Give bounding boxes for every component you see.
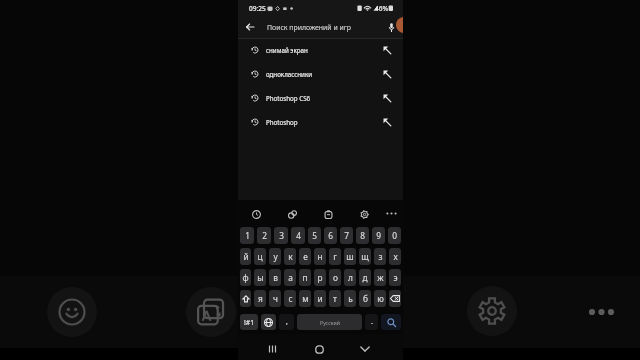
staticText: ч [273, 293, 278, 304]
button[interactable]: ч [269, 290, 281, 307]
button[interactable]: !#1 [240, 314, 258, 330]
button[interactable]: Photoshop CS6 [238, 86, 403, 110]
button[interactable]: г [329, 248, 341, 265]
button[interactable]: ц [254, 248, 266, 265]
button[interactable]: 8 [356, 227, 369, 244]
staticText: с [288, 293, 293, 304]
button[interactable]: одноклассники [238, 62, 403, 86]
button[interactable]: ж [374, 269, 386, 286]
button[interactable]: Emoji [47, 287, 97, 337]
button[interactable]: т [329, 290, 341, 307]
button[interactable]: у [269, 248, 281, 265]
button[interactable]: в [269, 269, 281, 286]
button[interactable]: к [284, 248, 296, 265]
button[interactable]: Shift [240, 290, 251, 307]
button[interactable]: 6 [324, 227, 337, 244]
staticText: т [333, 293, 337, 304]
button[interactable]: Clock [248, 206, 264, 222]
button[interactable]: й [240, 248, 251, 265]
staticText: о [333, 272, 338, 283]
staticText: э [393, 272, 398, 283]
staticText: , [286, 317, 288, 327]
button[interactable]: м [299, 290, 311, 307]
button[interactable]: 2 [257, 227, 271, 244]
button[interactable]: з [374, 248, 386, 265]
button[interactable]: Backspace [389, 290, 401, 307]
staticText: Русский [320, 319, 340, 326]
staticText: а [288, 272, 293, 283]
staticText: в [273, 272, 278, 283]
button[interactable]: Stickers [284, 206, 300, 222]
staticText: щ [361, 251, 369, 262]
button[interactable]: б [359, 290, 371, 307]
button[interactable]: Recents [264, 341, 280, 357]
staticText: ю [377, 293, 384, 304]
button[interactable]: More options [584, 304, 618, 320]
staticText: 9 [376, 230, 381, 241]
button[interactable]: , [279, 314, 294, 330]
button[interactable]: и [314, 290, 326, 307]
button[interactable]: Back [242, 19, 258, 35]
button[interactable]: Keyboard settings [356, 206, 372, 222]
button[interactable]: . [365, 314, 378, 330]
staticText: ы [257, 272, 264, 283]
button[interactable]: More [385, 208, 397, 218]
button[interactable]: Photoshop [238, 110, 403, 134]
button[interactable]: х [389, 248, 401, 265]
button[interactable]: ю [374, 290, 386, 307]
button[interactable]: н [314, 248, 326, 265]
staticText: ф [242, 272, 249, 283]
button[interactable]: с [284, 290, 296, 307]
staticText: р [317, 272, 323, 283]
button[interactable]: 4 [291, 227, 305, 244]
button[interactable]: а [284, 269, 296, 286]
staticText: !#1 [244, 318, 255, 327]
button[interactable]: о [329, 269, 341, 286]
button[interactable]: 3 [274, 227, 288, 244]
button[interactable]: Home [311, 341, 327, 357]
button[interactable]: Clipboard [320, 206, 336, 222]
button[interactable]: 5 [308, 227, 321, 244]
staticText: з [378, 251, 383, 262]
button[interactable]: п [299, 269, 311, 286]
button[interactable]: снимай экран [238, 38, 403, 62]
staticText: я [258, 293, 263, 304]
staticText: 3 [279, 230, 284, 241]
button[interactable]: Voice search [385, 21, 398, 34]
button[interactable]: 7 [340, 227, 353, 244]
button[interactable]: Change language [261, 314, 276, 330]
staticText: ж [377, 272, 384, 283]
staticText: у [273, 251, 278, 262]
button[interactable]: ы [254, 269, 266, 286]
button[interactable]: ь [344, 290, 356, 307]
staticText: одноклассники [266, 70, 313, 78]
button[interactable]: Translate [186, 287, 236, 337]
staticText: г [333, 251, 337, 262]
staticText: 46% [375, 4, 389, 13]
button[interactable]: я [254, 290, 266, 307]
button[interactable]: ш [344, 248, 356, 265]
staticText: л [348, 272, 353, 283]
staticText: п [302, 272, 308, 283]
button[interactable]: щ [359, 248, 371, 265]
staticText: снимай экран [266, 46, 308, 54]
button[interactable]: Back [357, 341, 373, 357]
staticText: к [288, 251, 293, 262]
button[interactable]: 0 [388, 227, 401, 244]
button[interactable]: э [389, 269, 401, 286]
button[interactable]: Search [381, 314, 401, 330]
button[interactable]: д [359, 269, 371, 286]
staticText: й [243, 251, 249, 262]
staticText: 1 [245, 230, 250, 241]
button[interactable]: Settings [467, 286, 517, 336]
button[interactable]: л [344, 269, 356, 286]
staticText: 7 [344, 230, 349, 241]
button[interactable]: 1 [240, 227, 254, 244]
button[interactable]: ф [240, 269, 251, 286]
button[interactable]: Account [396, 17, 403, 33]
staticText: х [393, 251, 398, 262]
button[interactable]: р [314, 269, 326, 286]
button[interactable]: 9 [372, 227, 385, 244]
button[interactable]: Русский [297, 314, 362, 330]
button[interactable]: е [299, 248, 311, 265]
